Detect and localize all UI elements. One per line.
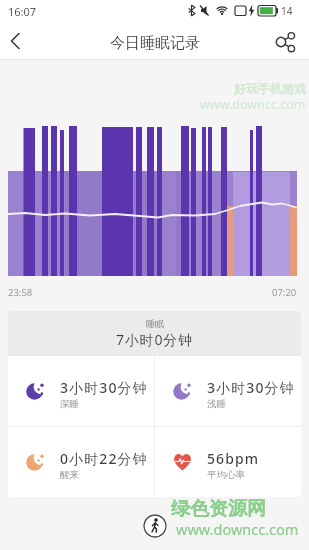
staticText: 14 (281, 4, 293, 18)
button[interactable] (143, 514, 167, 538)
staticText: 绿色资源网 (171, 497, 266, 521)
staticText: 56bpm (207, 449, 260, 468)
staticText: 07:20 (272, 286, 297, 299)
staticText: 今日睡眠记录 (110, 34, 200, 53)
staticText: 0小时22分钟 (60, 449, 148, 468)
button[interactable]: 56bpm (155, 427, 301, 496)
staticText: 醒来 (60, 469, 79, 481)
staticText: 好玩手机游戏 (234, 81, 306, 96)
button[interactable] (266, 22, 309, 60)
staticText: www.downcc.com (176, 519, 299, 539)
staticText: 深睡 (60, 398, 79, 410)
staticText: 7小时0分钟 (116, 330, 193, 349)
staticText: 16:07 (8, 4, 37, 19)
staticText: 平均心率 (207, 469, 245, 481)
staticText: 23:58 (8, 286, 33, 299)
button[interactable]: 0小时22分钟 (8, 427, 154, 496)
staticText: 睡眠 (146, 318, 164, 329)
button[interactable]: 3小时30分钟 (8, 356, 154, 426)
staticText: 3小时30分钟 (207, 378, 295, 397)
staticText: 浅睡 (207, 398, 226, 410)
staticText: 3小时30分钟 (60, 378, 148, 397)
staticText: www.downcc.com (200, 96, 306, 113)
button[interactable] (0, 22, 40, 60)
button[interactable]: 3小时30分钟 (155, 356, 301, 426)
